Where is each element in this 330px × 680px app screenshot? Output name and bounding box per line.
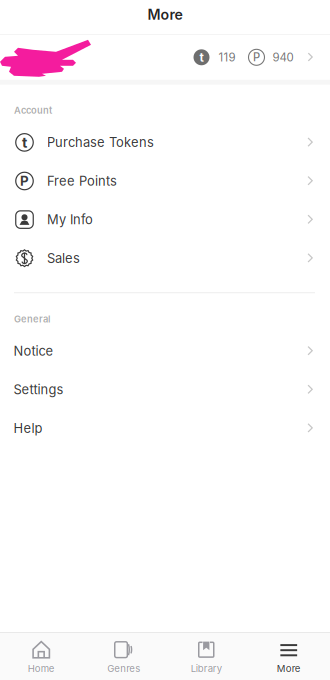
staticText: More (147, 6, 182, 23)
staticText: Sales (47, 250, 80, 266)
staticText: 940 (272, 50, 293, 64)
staticText: More (277, 663, 301, 674)
staticText: t (199, 50, 203, 64)
staticText: My Info (47, 212, 93, 227)
staticText: Purchase Tokens (47, 135, 154, 150)
button[interactable]: More (247, 631, 330, 680)
button[interactable]: P (0, 162, 330, 200)
button[interactable]: Home (0, 631, 82, 680)
button[interactable]: Settings (0, 370, 330, 409)
staticText: t (22, 133, 27, 151)
staticText: Genres (107, 663, 140, 674)
button[interactable]: Sales (0, 239, 330, 277)
button[interactable]: Help (0, 409, 330, 447)
staticText: Home (28, 663, 55, 674)
button[interactable]: t (0, 35, 330, 80)
staticText: P (253, 50, 260, 64)
staticText: Library (191, 663, 222, 674)
staticText: Settings (13, 382, 63, 397)
button[interactable]: t (0, 123, 330, 162)
staticText: General (14, 313, 50, 325)
staticText: Help (13, 420, 42, 436)
staticText: Account (14, 105, 52, 116)
staticText: 119 (218, 50, 235, 64)
staticText: Free Points (47, 173, 117, 189)
button[interactable]: Library (165, 631, 247, 680)
staticText: P (20, 173, 29, 189)
staticText: Notice (13, 343, 53, 359)
button[interactable]: Genres (82, 631, 165, 680)
button[interactable]: Notice (0, 332, 330, 370)
button[interactable]: My Info (0, 200, 330, 239)
